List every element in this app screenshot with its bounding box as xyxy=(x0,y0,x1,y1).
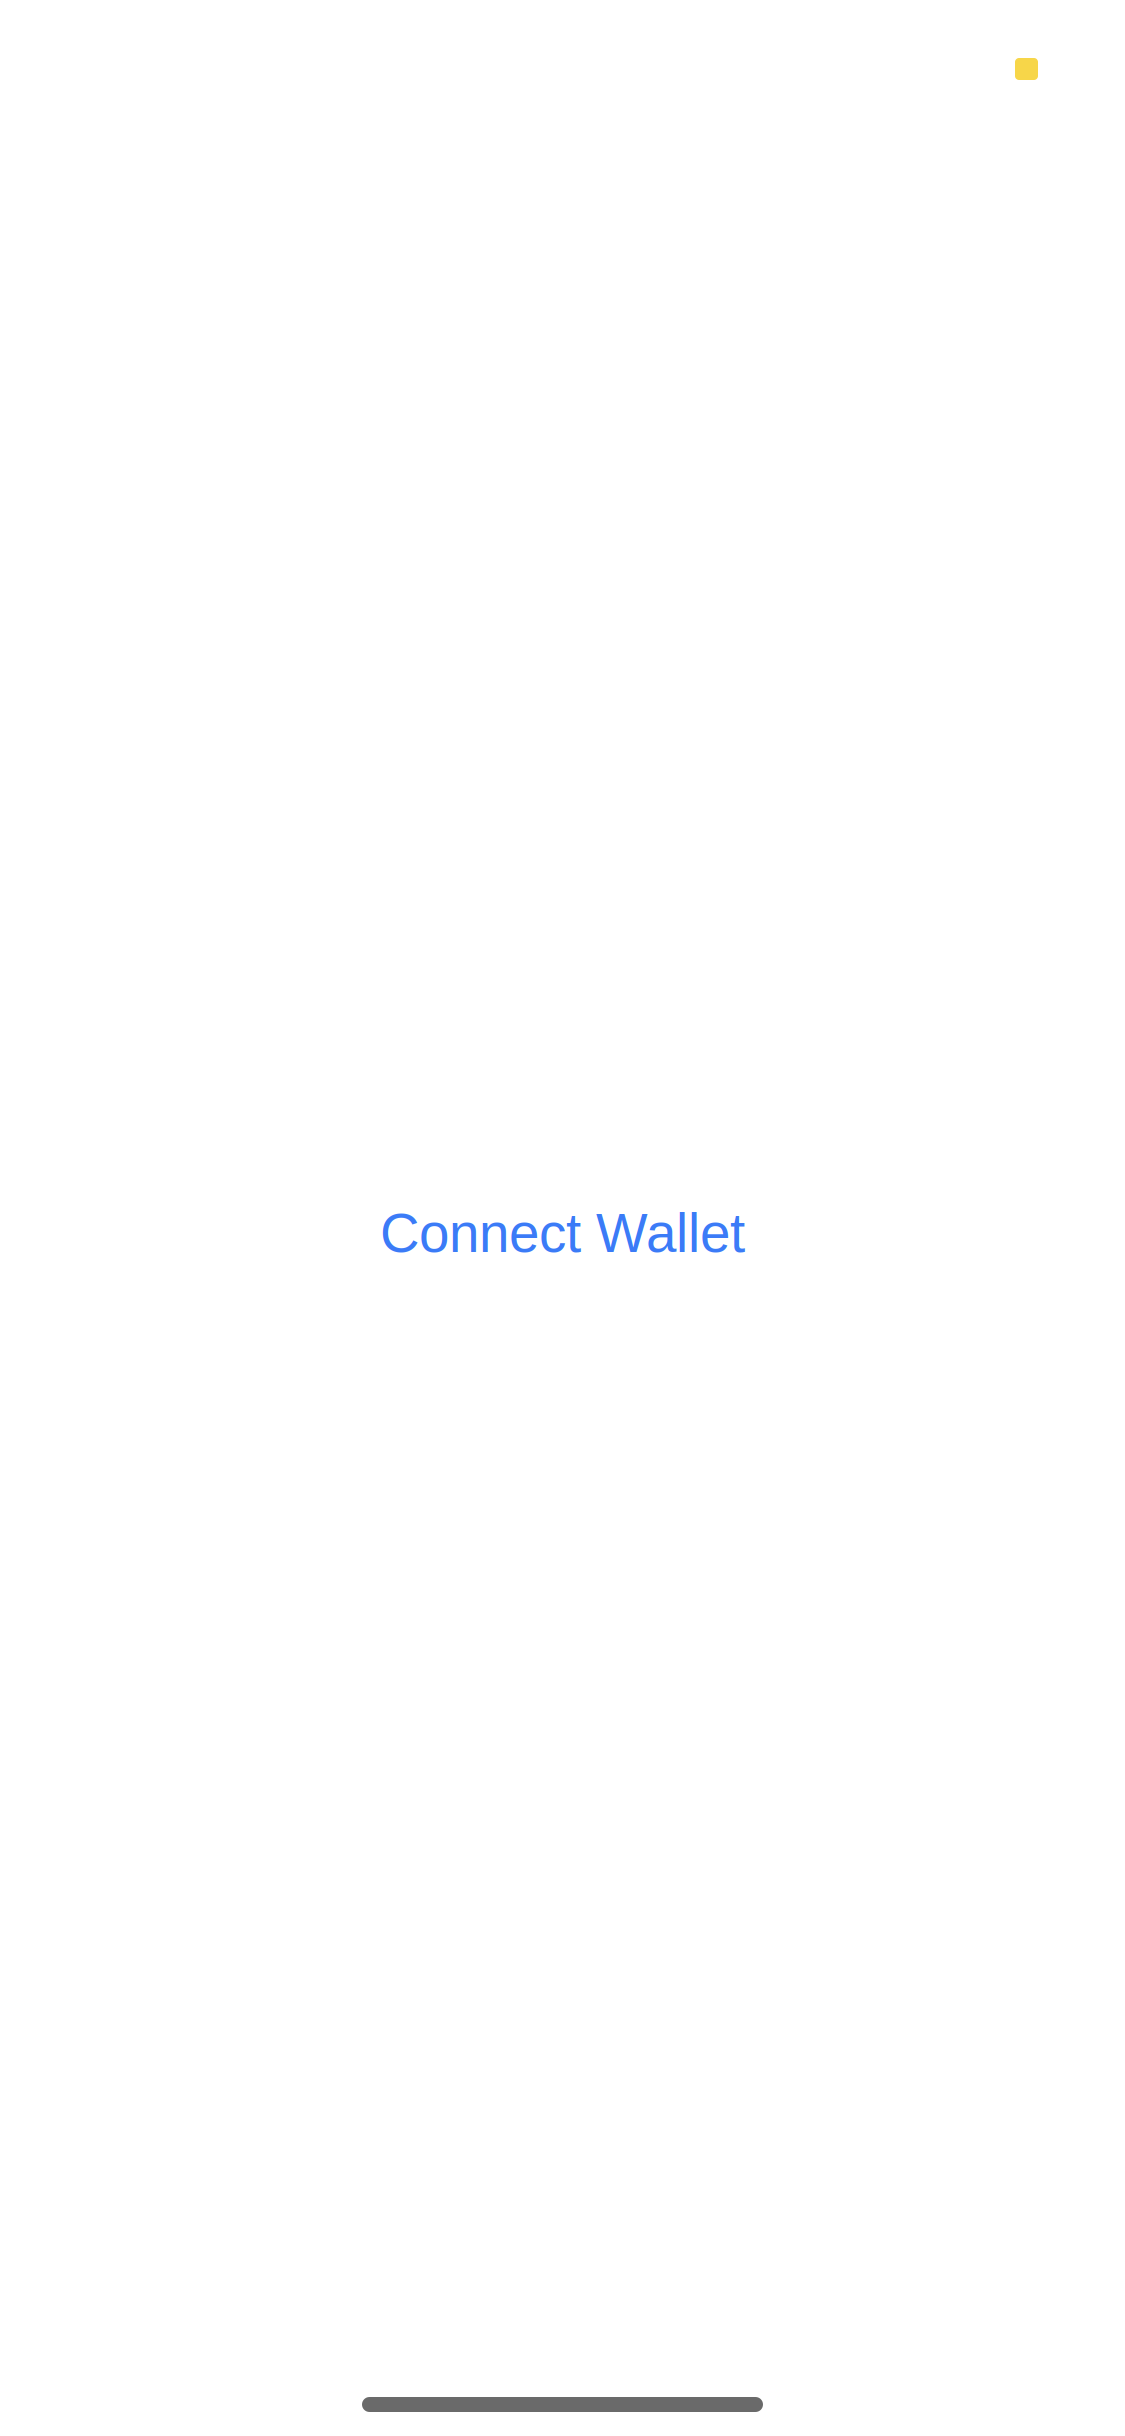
button[interactable]: Wallet status xyxy=(1015,58,1038,80)
button[interactable]: Connect Wallet xyxy=(380,1202,745,1264)
staticText: Connect Wallet xyxy=(380,1202,745,1264)
